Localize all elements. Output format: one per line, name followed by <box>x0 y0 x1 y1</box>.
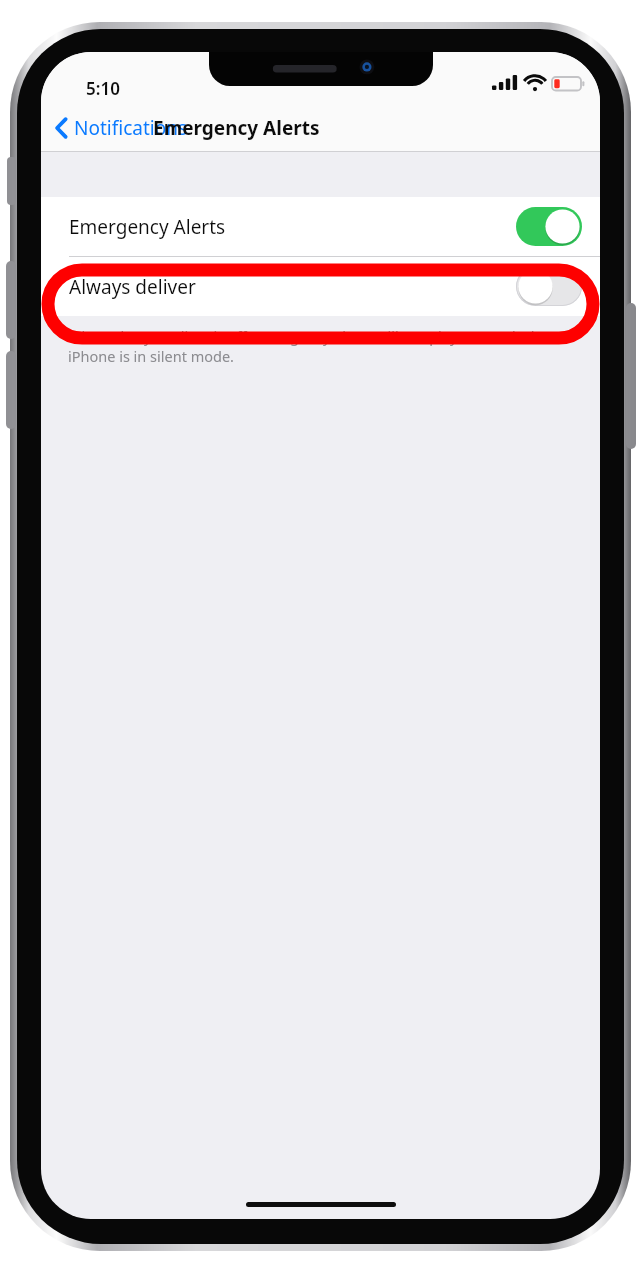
button[interactable]: Emergency Alerts <box>41 197 600 256</box>
button[interactable]: Always deliver <box>41 257 600 316</box>
button[interactable]: Notifications <box>51 110 192 146</box>
staticText: When Always Deliver is off, emergency al… <box>68 326 578 366</box>
staticText: Emergency Alerts <box>69 214 226 240</box>
button[interactable]: Always deliver, off <box>516 267 582 306</box>
staticText: Notifications <box>74 115 188 141</box>
button[interactable]: Emergency Alerts, on <box>516 207 582 246</box>
staticText: Emergency Alerts <box>153 115 320 141</box>
staticText: 5:10 <box>86 77 120 100</box>
staticText: Always deliver <box>69 274 196 300</box>
